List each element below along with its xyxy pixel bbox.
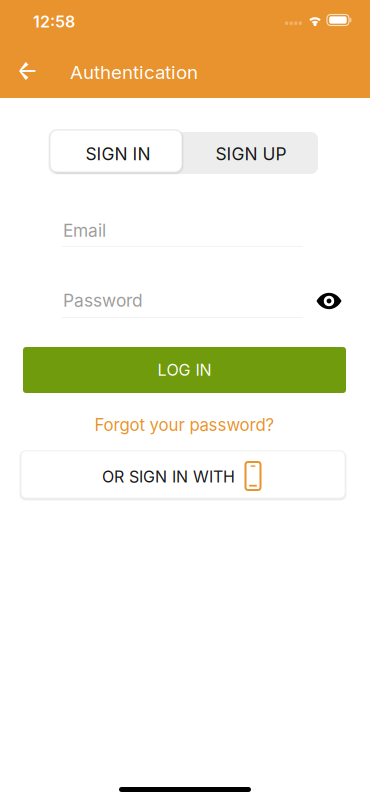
button[interactable]: SIGN IN bbox=[52, 132, 184, 174]
staticText: Password bbox=[63, 290, 143, 311]
staticText: SIGN UP bbox=[215, 143, 286, 164]
button[interactable]: Back bbox=[4, 49, 50, 93]
staticText: OR SIGN IN WITH bbox=[102, 467, 235, 486]
staticText: Email bbox=[63, 220, 106, 241]
button[interactable]: LOG IN bbox=[23, 347, 346, 393]
button[interactable]: SIGN UP bbox=[184, 132, 318, 174]
staticText: 12:58 bbox=[33, 12, 75, 31]
staticText: LOG IN bbox=[157, 360, 211, 380]
button[interactable]: OR SIGN IN WITH bbox=[23, 453, 347, 500]
staticText: SIGN IN bbox=[85, 143, 150, 164]
staticText: Forgot your password? bbox=[94, 415, 274, 435]
staticText: Authentication bbox=[70, 61, 198, 84]
button[interactable]: Forgot your password? bbox=[23, 410, 346, 440]
button[interactable]: Show password bbox=[307, 284, 351, 318]
